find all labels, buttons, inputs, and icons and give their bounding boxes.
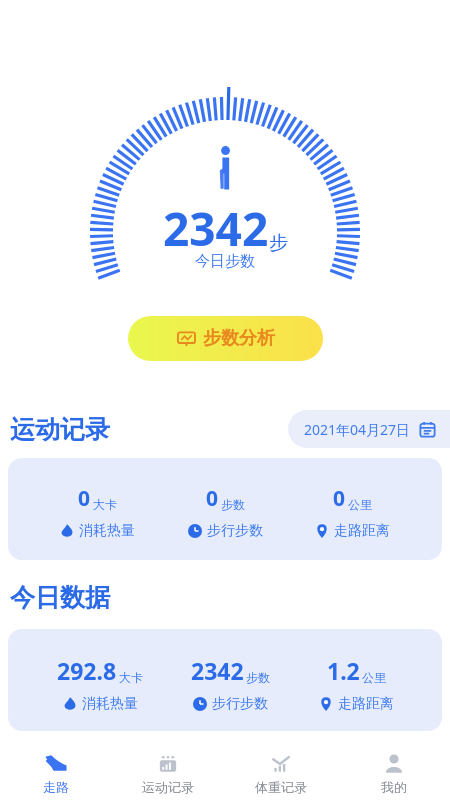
staticText: 大卡 — [119, 670, 143, 685]
staticText: 消耗热量 — [79, 522, 135, 540]
button[interactable]: 0 — [8, 458, 442, 560]
staticText: 今日步数 — [195, 252, 255, 271]
staticText: 今日数据 — [10, 582, 110, 613]
staticText: 0 — [206, 484, 219, 513]
button[interactable]: 2021年04月27日 — [288, 410, 450, 448]
staticText: 2342 — [191, 655, 244, 686]
staticText: 1.2 — [327, 655, 360, 686]
staticText: 2021年04月27日 — [304, 420, 411, 439]
staticText: 步数 — [246, 670, 270, 685]
button[interactable]: 走路 — [0, 746, 112, 800]
staticText: 体重记录 — [255, 779, 307, 795]
staticText: 消耗热量 — [82, 695, 138, 713]
button[interactable]: 体重记录 — [224, 746, 337, 800]
staticText: 292.8 — [57, 655, 117, 686]
button[interactable]: 我的 — [337, 746, 450, 800]
staticText: 大卡 — [93, 497, 117, 512]
staticText: 步行步数 — [212, 695, 268, 713]
staticText: 走路 — [43, 779, 69, 795]
staticText: 我的 — [381, 779, 407, 795]
staticText: 公里 — [362, 670, 386, 685]
staticText: 步行步数 — [207, 522, 263, 540]
staticText: 0 — [78, 484, 91, 513]
staticText: 运动记录 — [142, 779, 194, 795]
staticText: 走路距离 — [338, 695, 394, 713]
staticText: 步 — [269, 231, 288, 255]
staticText: 2342 — [163, 197, 269, 260]
button[interactable]: 步数分析 — [128, 316, 323, 361]
staticText: 运动记录 — [10, 414, 110, 445]
button[interactable]: 运动记录 — [112, 746, 224, 800]
button[interactable]: 292.8 — [8, 629, 442, 731]
staticText: 公里 — [348, 497, 372, 512]
staticText: 步数分析 — [203, 327, 275, 350]
staticText: 0 — [333, 484, 346, 513]
staticText: 步数 — [221, 497, 245, 512]
staticText: 走路距离 — [334, 522, 390, 540]
